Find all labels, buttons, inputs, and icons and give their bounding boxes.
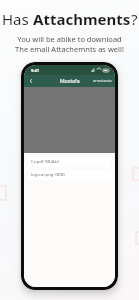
- staticText: ?: [131, 9, 138, 29]
- button[interactable]: anastasia: [93, 78, 112, 84]
- button[interactable]: Cv.pdf (584kb): [28, 157, 111, 167]
- staticText: anastasia: [93, 78, 112, 84]
- staticText: Mustafa: [60, 78, 80, 85]
- staticText: Cv.pdf (584kb): [31, 159, 59, 165]
- staticText: You will be abike to download The emall …: [0, 34, 139, 54]
- staticText: Attachments: [33, 9, 131, 29]
- button[interactable]: Back: [27, 77, 35, 85]
- staticText: Has: [2, 9, 33, 29]
- staticText: 9:41: [31, 68, 39, 73]
- staticText: logo-ai.png (3KB): [31, 172, 65, 178]
- button[interactable]: logo-ai.png (3KB): [28, 170, 111, 180]
